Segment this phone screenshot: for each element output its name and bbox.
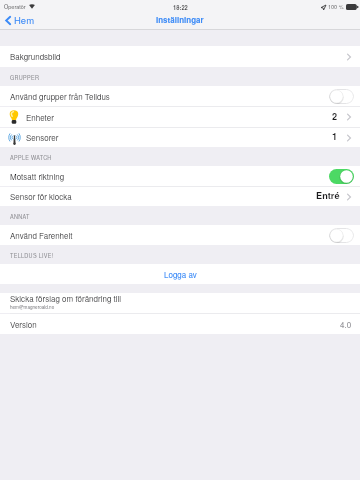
- staticText: ANNAT: [10, 213, 30, 221]
- staticText: 1: [332, 130, 338, 143]
- button[interactable]: Enheter: [0, 107, 360, 127]
- button[interactable]: Sensorer: [0, 128, 360, 147]
- button[interactable]: Toggle off: [329, 228, 354, 243]
- button[interactable]: Toggle on: [329, 169, 354, 184]
- staticText: Motsatt riktning: [10, 171, 65, 182]
- staticText: Version: [10, 319, 37, 330]
- staticText: GRUPPER: [10, 74, 40, 82]
- button[interactable]: Sensor för klocka: [0, 187, 360, 206]
- staticText: hem@magneroald.no: [10, 304, 55, 311]
- staticText: 100 %: [328, 3, 344, 11]
- staticText: Bakgrundsbild: [10, 51, 61, 62]
- button[interactable]: Hem: [5, 15, 35, 29]
- button[interactable]: Skicka förslag om förändring till: [0, 293, 360, 313]
- staticText: Sensorer: [26, 132, 59, 143]
- button[interactable]: Bakgrundsbild: [0, 46, 360, 67]
- staticText: Sensor för klocka: [10, 191, 72, 202]
- staticText: Hem: [14, 13, 35, 27]
- staticText: 18:22: [173, 3, 188, 11]
- staticText: Använd Farenheit: [10, 230, 73, 241]
- staticText: APPLE WATCH: [10, 154, 52, 162]
- staticText: 4.0: [340, 319, 352, 330]
- staticText: Operatör: [4, 3, 26, 11]
- staticText: Entré: [316, 189, 340, 202]
- staticText: Logga av: [164, 269, 197, 280]
- button[interactable]: Version: [0, 314, 360, 334]
- button[interactable]: Logga av: [0, 264, 360, 284]
- button[interactable]: Toggle off: [329, 89, 354, 104]
- staticText: Enheter: [26, 112, 54, 123]
- staticText: Inställningar: [156, 14, 204, 25]
- staticText: 2: [332, 110, 338, 123]
- button[interactable]: Använd Farenheit: [0, 225, 360, 245]
- staticText: Använd grupper från Telldus: [10, 91, 110, 102]
- button[interactable]: Använd grupper från Telldus: [0, 86, 360, 106]
- staticText: TELLDUS LIVE!: [10, 252, 54, 260]
- staticText: Skicka förslag om förändring till: [10, 293, 122, 304]
- button[interactable]: Motsatt riktning: [0, 166, 360, 186]
